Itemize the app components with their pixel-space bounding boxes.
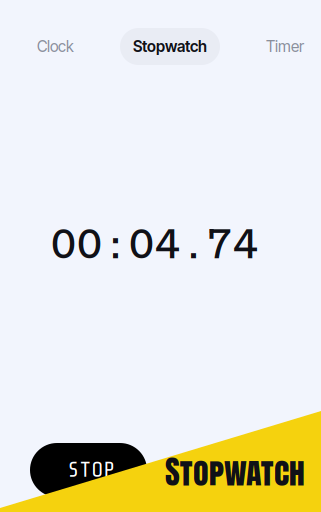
staticText: Stopwatch: [133, 37, 207, 56]
staticText: 00:04.74: [50, 221, 258, 267]
staticText: Timer: [266, 37, 304, 56]
button[interactable]: Clock: [24, 28, 87, 65]
staticText: Clock: [37, 37, 74, 56]
button[interactable]: STOP: [30, 443, 147, 497]
button[interactable]: Stopwatch: [120, 28, 220, 65]
staticText: STOP: [67, 458, 115, 482]
button[interactable]: Timer: [253, 28, 317, 65]
staticText: Stopwatch: [165, 448, 305, 496]
